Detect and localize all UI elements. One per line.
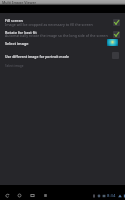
button[interactable]: Use different image for portrait mode <box>0 51 125 61</box>
button[interactable]: Switch on <box>107 39 118 46</box>
staticText: Select image <box>5 64 24 68</box>
button[interactable]: Multi Image Viewer app bar <box>0 0 125 5</box>
button[interactable]: Checked <box>113 31 120 38</box>
button[interactable]: Home <box>15 191 23 199</box>
button[interactable]: Rotate for best fit <box>0 29 125 40</box>
staticText: Fill screen <box>5 18 23 23</box>
button[interactable]: Recent apps <box>28 191 36 199</box>
button[interactable]: Select image <box>0 61 125 70</box>
button[interactable]: System status <box>92 192 125 199</box>
staticText: Multi Image Viewer <box>2 0 37 5</box>
button[interactable]: Select image <box>0 39 125 50</box>
staticText: Select image <box>5 41 29 46</box>
button[interactable]: Back <box>3 191 11 199</box>
button[interactable]: Screenshot <box>41 191 49 199</box>
staticText: Automatically rotate the image so the lo… <box>5 33 108 38</box>
staticText: Rotate for best fit <box>5 30 37 35</box>
button[interactable]: Fill screen <box>0 17 125 28</box>
staticText: Image will be cropped as necessary to fi… <box>5 22 93 27</box>
staticText: Use different image for portrait mode <box>5 54 69 59</box>
staticText: 8:34 <box>107 193 116 199</box>
button[interactable]: Checked <box>113 19 120 26</box>
